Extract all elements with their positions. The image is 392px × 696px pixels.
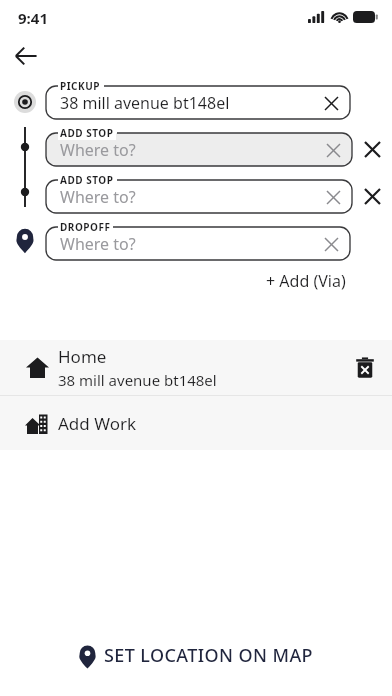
button[interactable]: Clear: [318, 231, 344, 257]
button[interactable]: Clear: [320, 184, 346, 210]
staticText: SET LOCATION ON MAP: [104, 643, 313, 668]
staticText: 38 mill avenue bt148el: [60, 92, 230, 114]
staticText: Where to?: [60, 139, 136, 161]
button[interactable]: Add Work: [0, 396, 392, 450]
button[interactable]: ADD STOP: [46, 126, 352, 166]
button[interactable]: PICKUP: [46, 79, 350, 119]
button[interactable]: Clear: [318, 90, 344, 116]
staticText: + Add (Via): [266, 270, 346, 292]
button[interactable]: Delete Home: [338, 341, 392, 395]
button[interactable]: Remove stop: [352, 173, 392, 213]
staticText: Where to?: [60, 186, 136, 208]
staticText: Where to?: [60, 233, 136, 255]
button[interactable]: Clear: [320, 137, 346, 163]
staticText: Home: [58, 345, 107, 368]
button[interactable]: ADD STOP: [46, 173, 352, 213]
staticText: Add Work: [58, 412, 137, 435]
staticText: 38 mill avenue bt148el: [58, 370, 217, 390]
button[interactable]: DROPOFF: [46, 220, 350, 260]
button[interactable]: Back: [8, 38, 44, 74]
staticText: PICKUP: [60, 79, 100, 93]
staticText: DROPOFF: [60, 220, 111, 234]
button[interactable]: Home: [0, 340, 392, 395]
button[interactable]: + Add (Via): [262, 268, 350, 294]
staticText: ADD STOP: [60, 126, 114, 140]
staticText: ADD STOP: [60, 173, 114, 187]
button[interactable]: Remove stop: [352, 126, 392, 166]
staticText: 9:41: [18, 8, 48, 28]
button[interactable]: SET LOCATION ON MAP: [0, 636, 392, 674]
